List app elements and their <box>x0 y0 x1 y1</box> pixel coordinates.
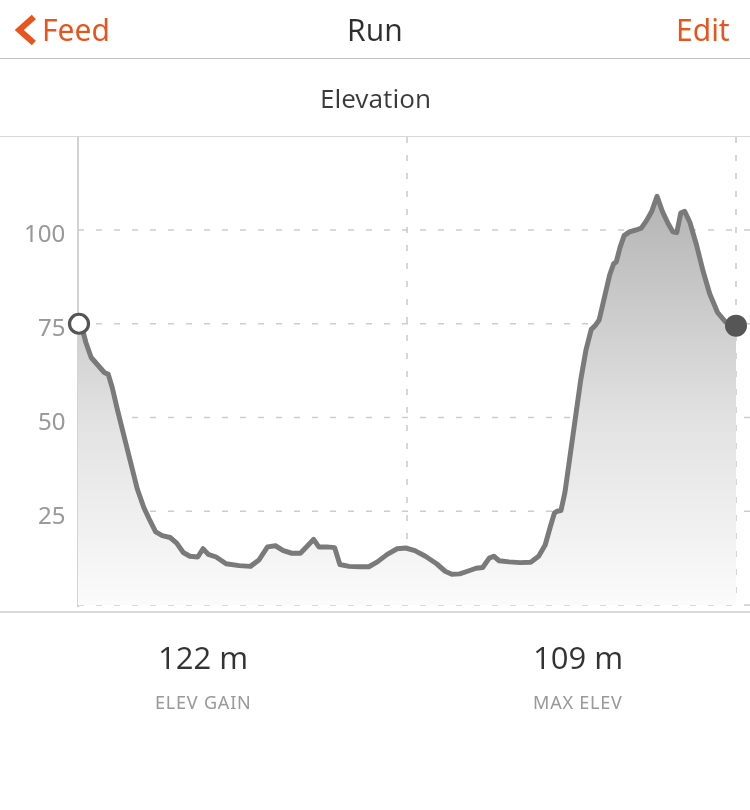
button[interactable]: Feed <box>0 3 122 56</box>
staticText: Edit <box>676 9 730 50</box>
staticText: 75 <box>38 310 66 343</box>
staticText: 109 m <box>533 636 624 678</box>
staticText: Run <box>347 9 403 50</box>
staticText: 122 m <box>158 636 249 678</box>
staticText: 100 <box>24 216 66 249</box>
staticText: 50 <box>38 404 66 437</box>
button[interactable]: 122 m <box>0 612 406 715</box>
staticText: ELEV GAIN <box>155 690 252 715</box>
button[interactable]: 109 m <box>406 612 750 715</box>
staticText: 25 <box>38 498 66 531</box>
staticText: Feed <box>42 9 110 50</box>
button[interactable]: Edit <box>656 1 750 58</box>
staticText: MAX ELEV <box>533 690 623 715</box>
staticText: Elevation <box>320 80 431 115</box>
